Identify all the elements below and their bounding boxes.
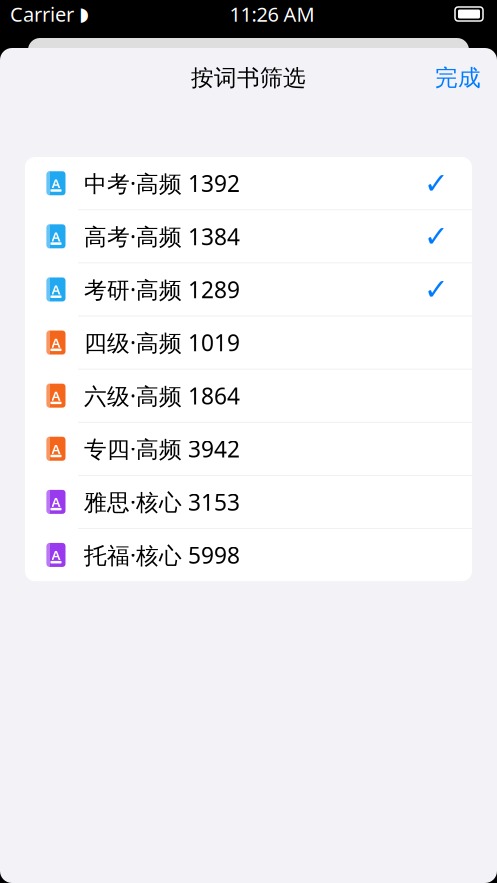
staticText: ◗ [79, 3, 89, 25]
staticText: ✓ [424, 273, 449, 306]
staticText: A [51, 227, 60, 245]
staticText: ✓ [424, 167, 449, 200]
button[interactable]: A [25, 422, 472, 476]
staticText: 中考·高频 1392 [84, 168, 240, 198]
button[interactable]: A [25, 529, 472, 581]
staticText: 雅思·核心 3153 [84, 487, 240, 517]
staticText: A [51, 174, 60, 192]
staticText: A [51, 281, 60, 298]
button[interactable]: A [25, 369, 472, 422]
staticText: ✓ [424, 220, 449, 253]
staticText: A [51, 387, 60, 404]
button[interactable]: 完成 [419, 54, 497, 102]
staticText: Carrier [10, 1, 74, 27]
staticText: 高考·高频 1384 [84, 221, 240, 251]
staticText: 考研·高频 1289 [84, 274, 240, 304]
staticText: A [51, 546, 60, 564]
staticText: A [51, 440, 60, 458]
staticText: 按词书筛选 [191, 64, 306, 92]
button[interactable]: A [25, 316, 472, 369]
button[interactable]: A [25, 157, 472, 210]
staticText: A [51, 334, 60, 351]
staticText: 托福·核心 5998 [84, 540, 240, 570]
staticText: 11:26 AM [229, 1, 314, 27]
staticText: 四级·高频 1019 [84, 327, 240, 358]
button[interactable]: A [25, 210, 472, 263]
staticText: A [51, 493, 60, 511]
staticText: 完成 [435, 64, 481, 92]
staticText: 六级·高频 1864 [84, 381, 240, 411]
button[interactable]: A [25, 263, 472, 316]
staticText: 专四·高频 3942 [84, 434, 240, 464]
button[interactable]: A [25, 476, 472, 529]
